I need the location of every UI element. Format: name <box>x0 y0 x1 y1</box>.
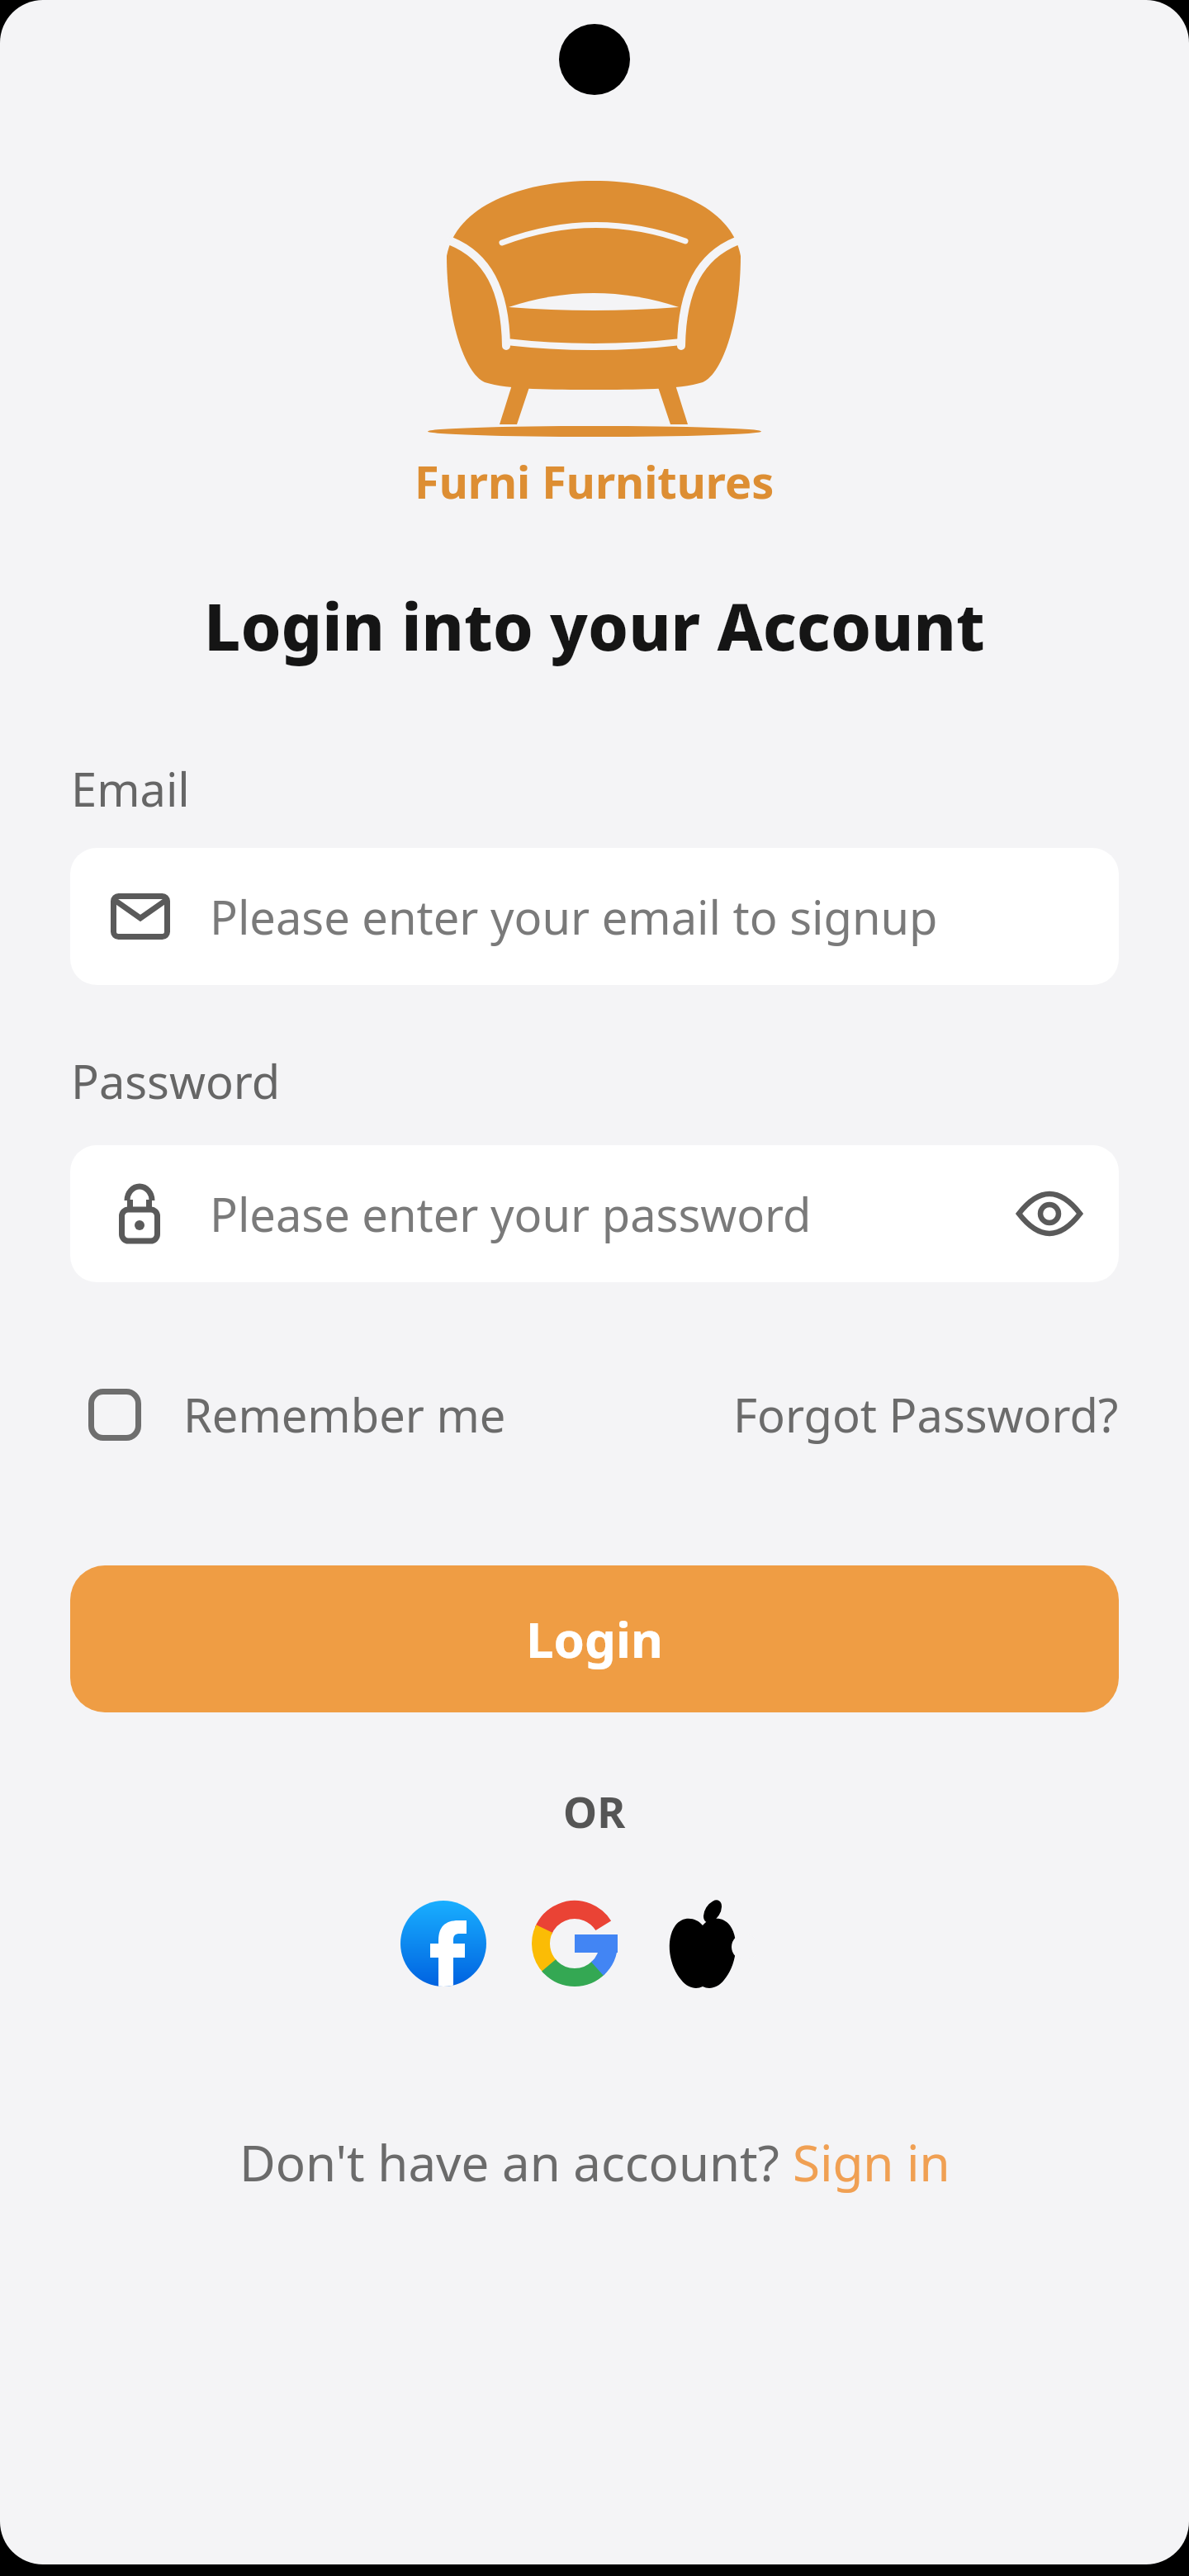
button[interactable]: Please enter your password <box>70 1145 1119 1282</box>
staticText: Login into your Account <box>204 582 985 670</box>
staticText: Please enter your email to signup <box>210 885 938 948</box>
button[interactable] <box>663 1901 742 1990</box>
staticText: Please enter your password <box>210 1182 1016 1245</box>
staticText: Email <box>71 757 190 820</box>
staticText: Remember me <box>183 1383 506 1446</box>
staticText: Login <box>526 1605 663 1673</box>
button[interactable] <box>532 1901 618 1986</box>
button[interactable]: Forgot Password? <box>733 1383 1119 1446</box>
button[interactable]: Remember me <box>88 1383 506 1446</box>
staticText: Password <box>71 1049 281 1112</box>
staticText: Furni Furnitures <box>414 451 775 512</box>
button[interactable]: Login <box>70 1565 1119 1712</box>
button[interactable]: Sign in <box>793 2129 950 2196</box>
button[interactable] <box>400 1901 486 1986</box>
staticText: Don't have an account? <box>239 2129 793 2196</box>
staticText: OR <box>563 1782 626 1840</box>
button[interactable]: Please enter your email to signup <box>70 848 1119 985</box>
